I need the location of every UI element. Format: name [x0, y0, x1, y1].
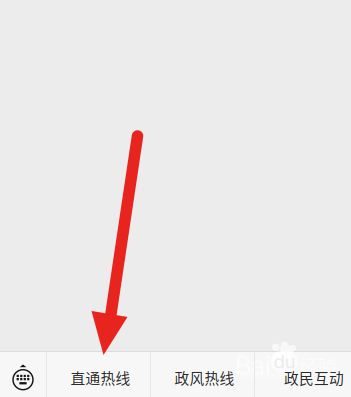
button[interactable]: 直通热线	[47, 352, 150, 397]
staticText: 政风热线	[174, 367, 234, 388]
staticText: 经验	[299, 352, 337, 379]
staticText: du	[273, 350, 295, 373]
staticText: 直通热线	[70, 367, 130, 388]
button[interactable]: 政民互动	[255, 352, 351, 397]
staticText: 政民互动	[284, 367, 344, 388]
staticText: Bai	[235, 350, 271, 381]
button[interactable]: 政风热线	[151, 352, 254, 397]
staticText: jingyan.baidu.com	[240, 371, 300, 379]
button[interactable]: Hide keyboard	[0, 352, 46, 397]
